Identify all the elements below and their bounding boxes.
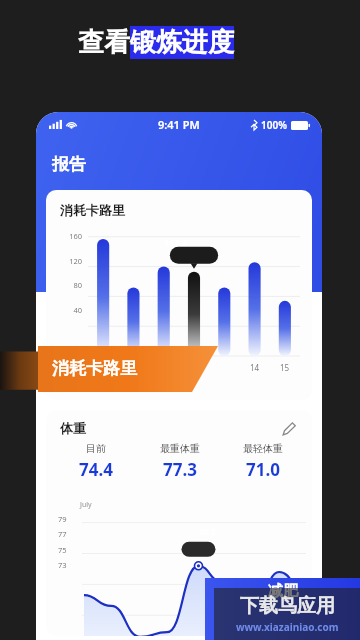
staticText: July bbox=[80, 500, 92, 510]
button[interactable]: 减肥 bbox=[205, 578, 360, 640]
staticText: 75 bbox=[58, 545, 67, 555]
staticText: 锻炼进度 bbox=[130, 26, 234, 59]
staticText: 15 bbox=[280, 362, 290, 373]
staticText: 100% bbox=[261, 118, 287, 132]
button[interactable]: 消耗卡路里 bbox=[46, 190, 312, 400]
staticText: 80 bbox=[56, 280, 82, 290]
staticText: 74.4 bbox=[79, 458, 113, 481]
staticText: 77 bbox=[58, 529, 67, 539]
button[interactable]: 消耗卡路里 bbox=[0, 346, 360, 392]
staticText: 117.4 bbox=[164, 236, 188, 248]
staticText: 40 bbox=[56, 305, 82, 315]
staticText: 查看 bbox=[78, 26, 130, 59]
button[interactable]: 目前 bbox=[54, 442, 138, 481]
staticText: 报告 bbox=[52, 154, 86, 175]
button[interactable]: Edit weight bbox=[278, 418, 300, 440]
staticText: 79 bbox=[58, 514, 67, 524]
button[interactable]: 最轻体重 bbox=[221, 442, 304, 481]
staticText: 120 bbox=[56, 256, 82, 266]
staticText: 77.3 bbox=[163, 458, 197, 481]
button[interactable]: 体重 bbox=[46, 410, 312, 636]
staticText: 160 bbox=[56, 231, 82, 241]
staticText: 消耗卡路里 bbox=[52, 358, 137, 379]
staticText: 体重 bbox=[60, 420, 86, 436]
staticText: 14 bbox=[250, 362, 260, 373]
staticText: 9:41 PM bbox=[158, 117, 200, 132]
staticText: 目前 bbox=[86, 442, 106, 455]
staticText: 最轻体重 bbox=[243, 442, 283, 455]
staticText: 下载鸟应用 bbox=[240, 594, 335, 618]
staticText: 73 bbox=[58, 560, 67, 570]
staticText: www.xiazainiao.com bbox=[236, 620, 339, 634]
staticText: 消耗卡路里 bbox=[60, 202, 125, 218]
button[interactable]: 最重体重 bbox=[138, 442, 221, 481]
staticText: 最重体重 bbox=[160, 442, 200, 455]
staticText: 71.0 bbox=[246, 458, 280, 481]
staticText: 减肥 bbox=[268, 582, 298, 601]
